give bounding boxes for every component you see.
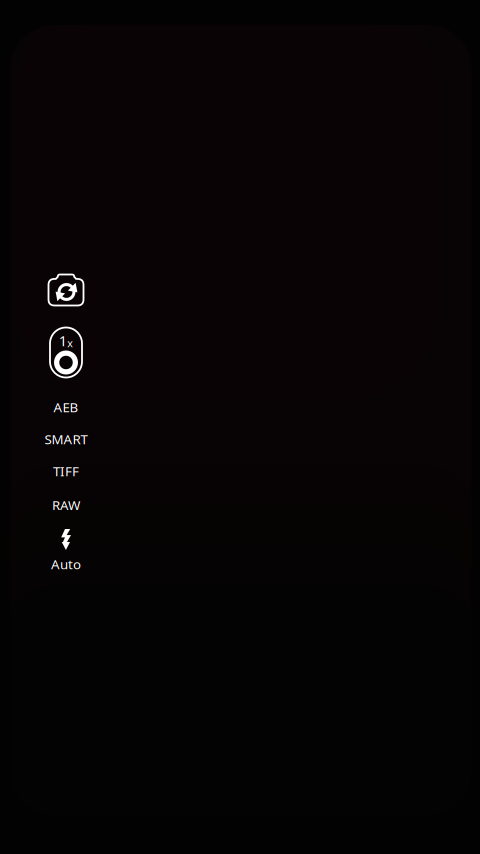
button[interactable]: Switch camera	[42, 269, 90, 313]
button[interactable]: RAW	[29, 493, 103, 517]
staticText: Auto	[51, 555, 81, 573]
button[interactable]: Flash auto	[31, 528, 101, 576]
staticText: SMART	[44, 430, 87, 448]
button[interactable]: TIFF	[29, 459, 103, 483]
button[interactable]: AEB	[29, 395, 103, 419]
button[interactable]: SMART	[29, 427, 103, 451]
staticText: RAW	[52, 496, 80, 514]
button[interactable]: 1x lens	[42, 324, 90, 380]
staticText: AEB	[53, 398, 78, 416]
staticText: x	[67, 336, 73, 350]
staticText: TIFF	[53, 462, 79, 480]
staticText: 1	[59, 331, 67, 350]
